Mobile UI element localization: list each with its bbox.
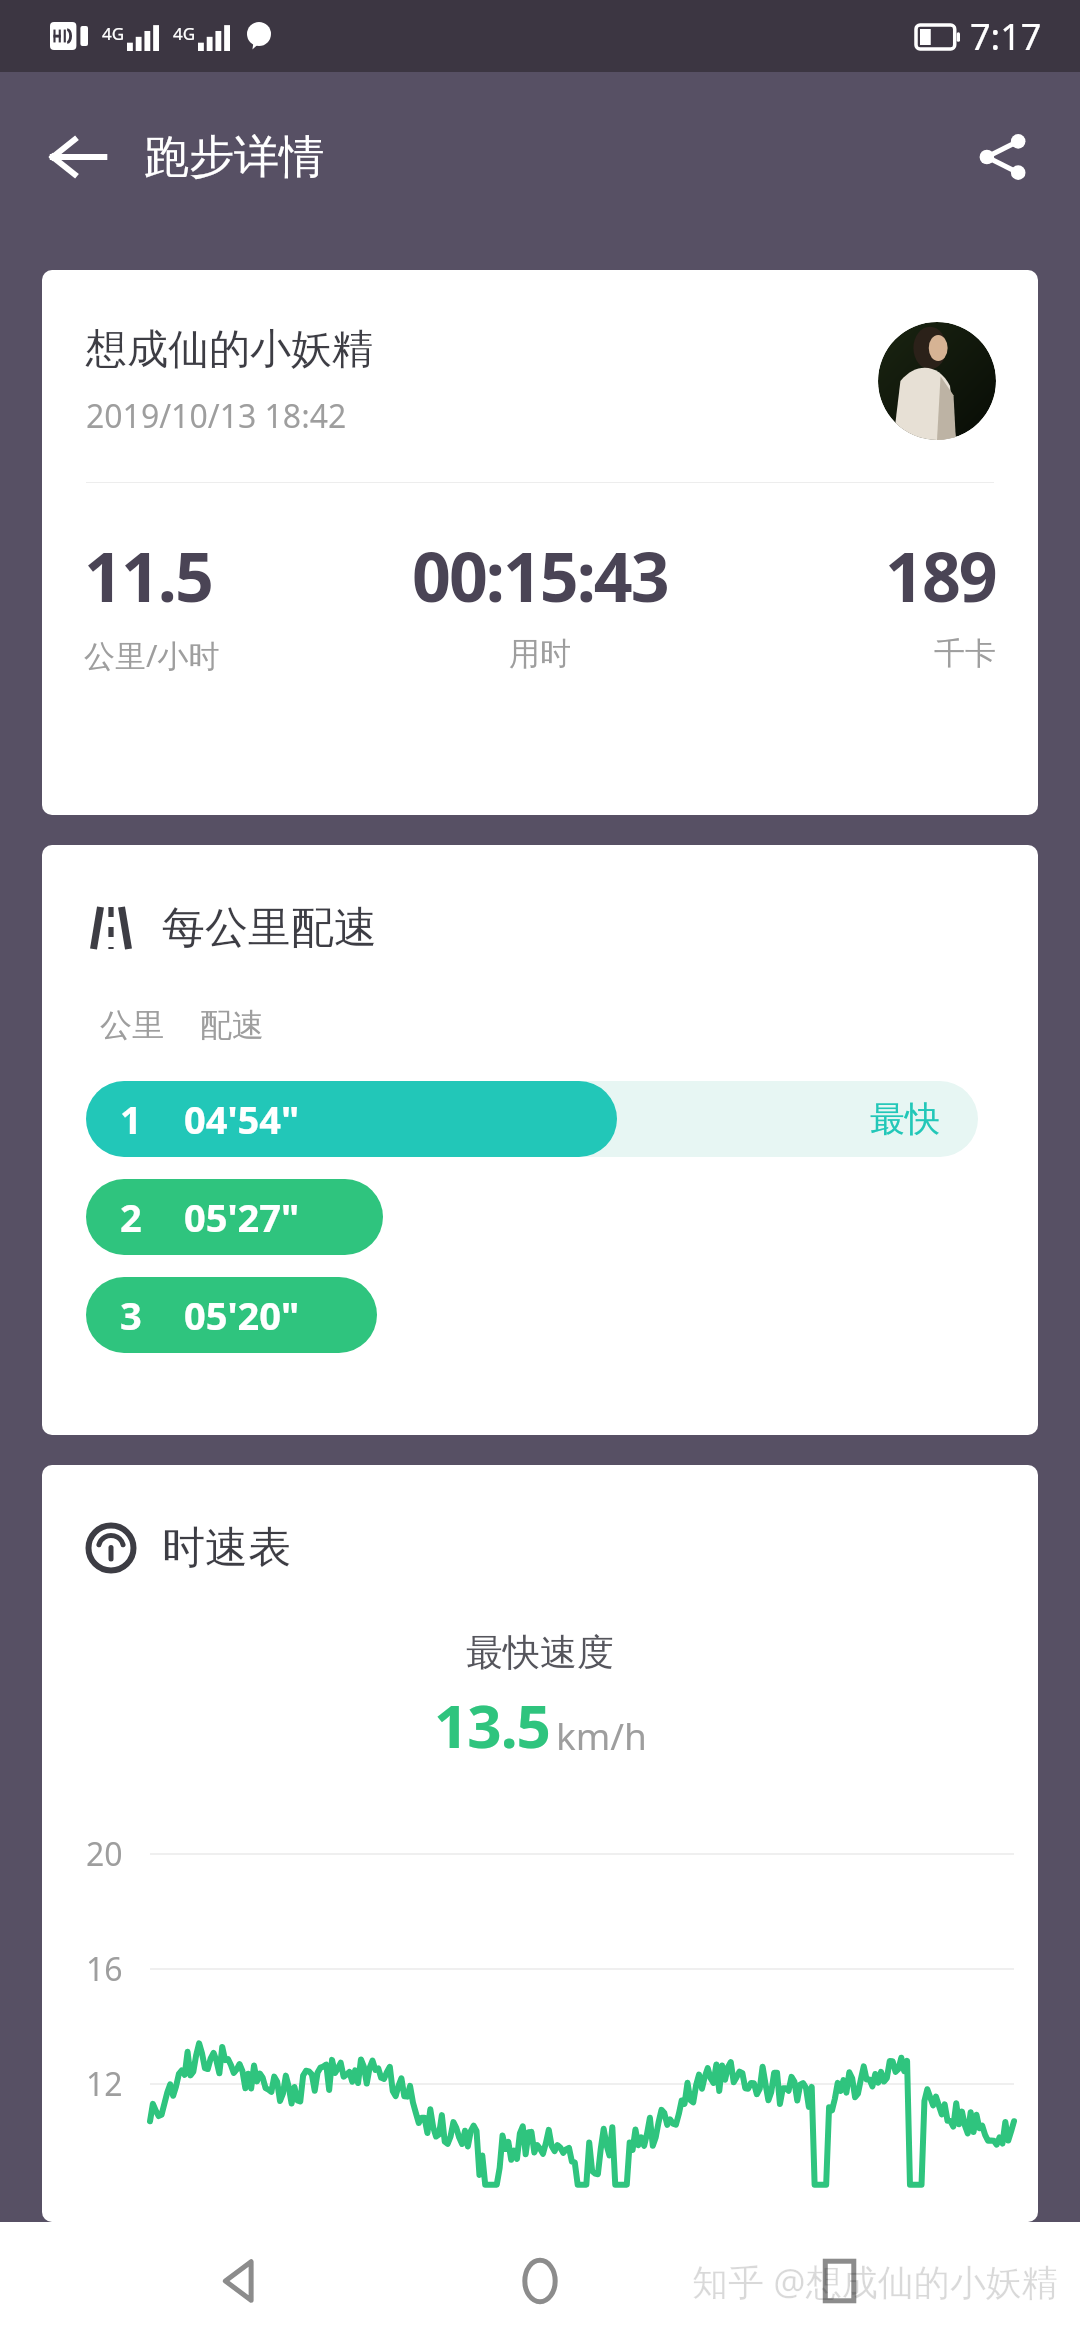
staticText: 20 <box>86 1832 123 1876</box>
staticText: 00:15:43 <box>412 529 668 622</box>
staticText: 最快速度 <box>466 1629 614 1676</box>
button[interactable]: 时速表 <box>42 1465 1038 2222</box>
staticText: 04'54" <box>184 1093 300 1145</box>
staticText: 2 <box>120 1191 142 1243</box>
staticText: 2019/10/13 18:42 <box>86 394 347 438</box>
button[interactable]: Recent apps <box>781 2222 899 2340</box>
staticText: 公里/小时 <box>84 634 220 676</box>
staticText: 05'27" <box>184 1191 300 1243</box>
button[interactable]: Home <box>481 2222 599 2340</box>
button[interactable]: 2 <box>86 1179 994 1255</box>
staticText: 16 <box>86 1947 123 1991</box>
staticText: 12 <box>86 2062 123 2106</box>
staticText: 11.5 <box>84 529 212 622</box>
staticText: 知乎 @想成仙的小妖精 <box>692 2257 1058 2306</box>
staticText: 4G <box>173 22 196 45</box>
staticText: 189 <box>885 529 996 622</box>
staticText: 1 <box>120 1093 142 1145</box>
button[interactable]: Back <box>182 2222 300 2340</box>
staticText: 配速 <box>200 1005 264 1045</box>
button[interactable]: 想成仙的小妖精 <box>42 270 1038 815</box>
staticText: 3 <box>120 1289 142 1341</box>
staticText: 13.5 <box>434 1684 550 1766</box>
staticText: 7:17 <box>970 12 1042 61</box>
staticText: 千卡 <box>934 634 996 673</box>
staticText: 05'20" <box>184 1289 300 1341</box>
button[interactable]: 最快 <box>86 1081 994 1157</box>
staticText: 最快 <box>870 1097 940 1141</box>
button[interactable]: Back <box>26 105 130 209</box>
staticText: 用时 <box>509 634 571 673</box>
staticText: 时速表 <box>162 1521 291 1575</box>
staticText: km/h <box>556 1710 647 1760</box>
staticText: 每公里配速 <box>162 901 377 955</box>
button[interactable]: 每公里配速 <box>42 845 1038 1435</box>
staticText: 公里 <box>100 1005 164 1045</box>
staticText: 跑步详情 <box>144 129 324 186</box>
staticText: 4G <box>102 22 125 45</box>
button[interactable]: Share <box>950 105 1054 209</box>
staticText: 想成仙的小妖精 <box>86 324 373 376</box>
button[interactable]: 3 <box>86 1277 994 1353</box>
